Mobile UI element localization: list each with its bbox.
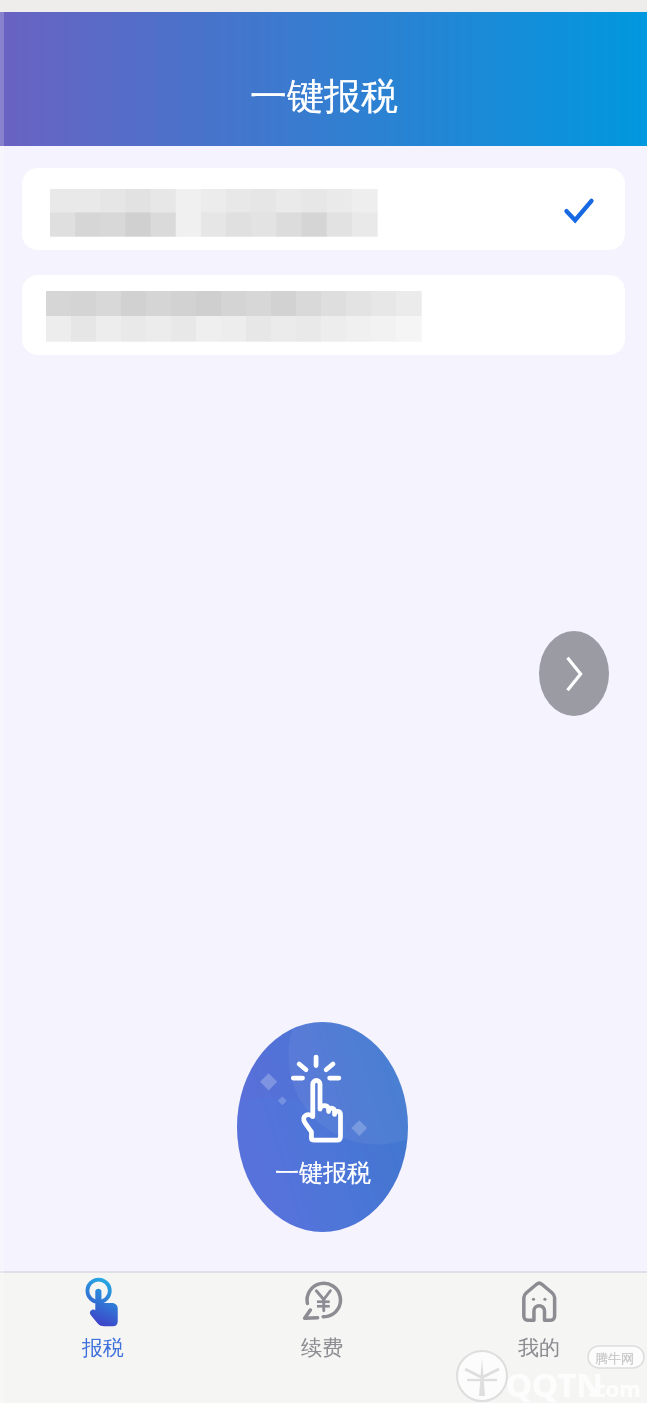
button[interactable]: 一键报税 — [237, 1022, 408, 1232]
button[interactable] — [22, 168, 625, 250]
staticText: 一键报税 — [250, 73, 398, 120]
staticText: 我的 — [518, 1335, 560, 1361]
staticText: QQTN — [506, 1362, 604, 1403]
staticText: 腾牛网 — [595, 1350, 634, 1366]
staticText: 报税 — [82, 1335, 124, 1361]
button[interactable]: 我的 — [475, 1273, 603, 1401]
button[interactable]: Next — [539, 631, 609, 716]
staticText: .com — [588, 1373, 641, 1403]
staticText: 续费 — [301, 1335, 343, 1361]
button[interactable]: 续费 — [258, 1273, 386, 1401]
button[interactable] — [22, 275, 625, 355]
button[interactable]: 报税 — [39, 1273, 167, 1401]
staticText: 一键报税 — [275, 1158, 371, 1188]
